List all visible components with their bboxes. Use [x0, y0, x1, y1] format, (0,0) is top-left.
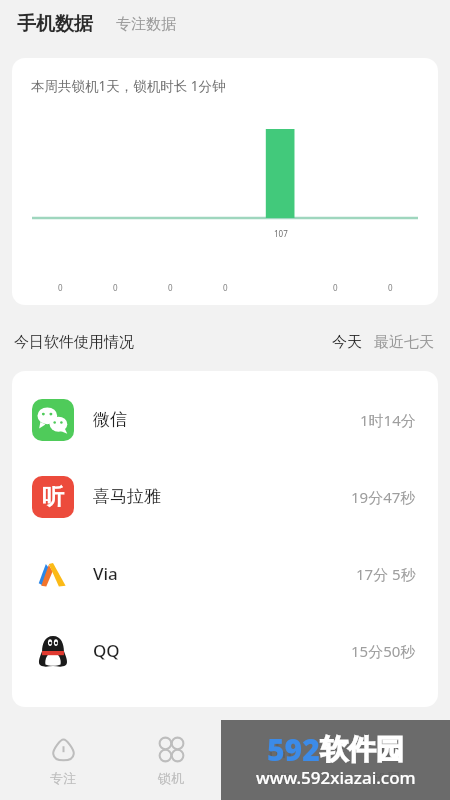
staticText: 设置 — [374, 770, 400, 786]
staticText: 17分 5秒 — [356, 564, 416, 584]
staticText: Via — [93, 562, 118, 585]
staticText: 1时14分 — [360, 410, 416, 430]
staticText: 0 — [168, 282, 173, 293]
staticText: 数据 — [266, 770, 292, 786]
staticText: www.592xiazai.com — [256, 766, 416, 789]
staticText: 锁机 — [158, 770, 184, 786]
staticText: 15分50秒 — [351, 641, 416, 661]
other: 设置 — [374, 736, 401, 763]
staticText: QQ — [93, 639, 120, 662]
button[interactable]: 听 — [12, 458, 438, 535]
staticText: 微信 — [93, 409, 127, 430]
staticText: 手机数据 — [17, 12, 93, 36]
staticText: 喜马拉雅 — [93, 486, 161, 507]
staticText: 今天 — [332, 333, 362, 352]
button[interactable]: 手机数据 — [17, 12, 93, 36]
button[interactable]: QQ — [12, 612, 438, 689]
staticText: 本周共锁机1天，锁机时长 1分钟 — [31, 77, 226, 95]
button[interactable]: 锁机 — [126, 730, 216, 792]
other: 锁机 — [158, 736, 185, 763]
button[interactable]: 专注数据 — [116, 15, 176, 34]
staticText: 专注 — [50, 770, 76, 786]
button[interactable]: 设置 — [342, 730, 432, 792]
staticText: 听 — [42, 483, 64, 511]
button[interactable]: 数据 — [234, 730, 324, 792]
button[interactable]: 专注 — [18, 730, 108, 792]
button[interactable]: 微信 — [12, 381, 438, 458]
staticText: 专注数据 — [116, 15, 176, 34]
staticText: 592 — [267, 729, 320, 770]
button[interactable]: 最近七天 — [374, 333, 434, 352]
other: 数据 — [266, 736, 293, 763]
staticText: 0 — [113, 282, 118, 293]
button[interactable]: Via — [12, 535, 438, 612]
staticText: 今日软件使用情况 — [14, 333, 134, 352]
other: 专注 — [50, 736, 77, 763]
staticText: 0 — [388, 282, 393, 293]
staticText: 0 — [58, 282, 63, 293]
staticText: 107 — [274, 228, 288, 239]
staticText: 19分47秒 — [351, 487, 416, 507]
staticText: 0 — [223, 282, 228, 293]
staticText: 0 — [333, 282, 338, 293]
button[interactable]: 今天 — [332, 333, 362, 352]
staticText: 最近七天 — [374, 333, 434, 352]
staticText: 软件园 — [320, 732, 404, 767]
